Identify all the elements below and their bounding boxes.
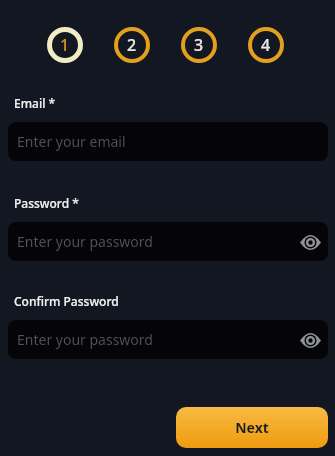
staticText: Email * <box>14 95 56 111</box>
button[interactable]: Next <box>176 407 328 448</box>
button[interactable]: Enter your email <box>8 122 328 161</box>
staticText: Enter your password <box>17 232 153 251</box>
staticText: Next <box>235 418 269 437</box>
button[interactable]: Enter your password <box>8 320 328 359</box>
button[interactable]: Enter your password <box>8 222 328 261</box>
staticText: 3 <box>194 34 204 56</box>
staticText: 1 <box>60 34 70 56</box>
staticText: Confirm Password <box>14 293 119 309</box>
button[interactable] <box>296 228 324 256</box>
staticText: 2 <box>127 34 137 56</box>
staticText: 4 <box>261 34 271 56</box>
staticText: Enter your password <box>17 330 153 349</box>
button[interactable]: 4 <box>248 27 284 63</box>
button[interactable]: 3 <box>181 27 217 63</box>
staticText: Password * <box>14 195 79 211</box>
button[interactable]: 1 <box>47 27 83 63</box>
button[interactable] <box>296 326 324 354</box>
staticText: Enter your email <box>17 132 126 151</box>
button[interactable]: 2 <box>114 27 150 63</box>
